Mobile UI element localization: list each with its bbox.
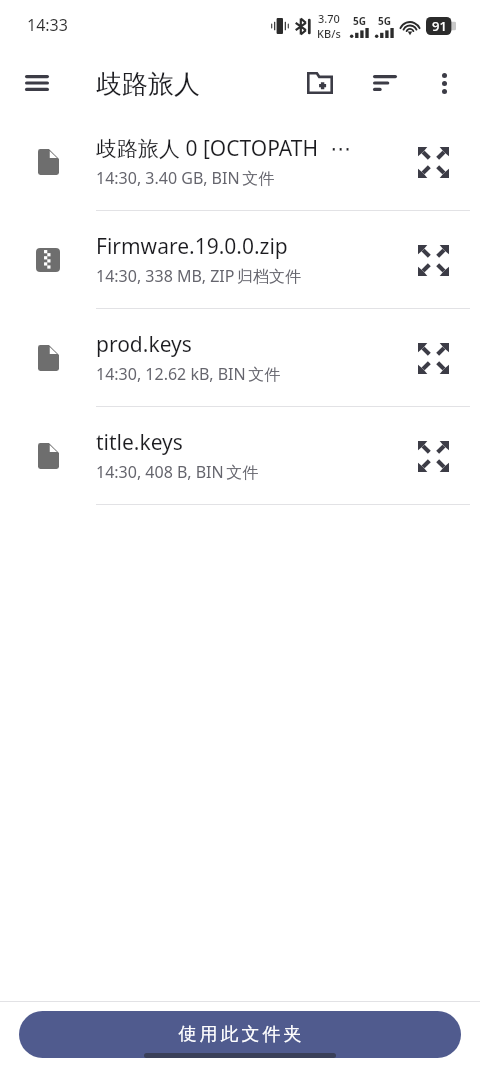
staticText: 14:33	[27, 14, 68, 36]
staticText: Firmware.19.0.0.zip	[96, 232, 288, 261]
button[interactable]: Firmware.19.0.0.zip	[0, 211, 480, 309]
staticText: 3.70	[318, 11, 340, 26]
button[interactable]: Expand	[406, 429, 460, 483]
staticText: 使用此文件夹	[177, 1023, 303, 1046]
staticText: title.keys	[96, 428, 183, 457]
button[interactable]: Expand	[406, 233, 460, 287]
staticText: 14:30, 338 MB, ZIP 归档文件	[96, 265, 302, 287]
staticText: 5G	[378, 14, 391, 28]
button[interactable]: title.keys	[0, 407, 480, 505]
staticText: prod.keys	[96, 330, 192, 359]
button[interactable]: Expand	[406, 331, 460, 385]
button[interactable]: 使用此文件夹	[19, 1011, 461, 1058]
staticText: 歧路旅人 0 [OCTOPATH ⋯	[96, 134, 352, 163]
staticText: 14:30, 408 B, BIN 文件	[96, 461, 259, 483]
button[interactable]: More options	[420, 59, 468, 107]
staticText: 歧路旅人	[96, 68, 200, 101]
button[interactable]: 歧路旅人 0 [OCTOPATH ⋯	[0, 113, 480, 211]
button[interactable]: Navigation menu	[13, 59, 61, 107]
button[interactable]: Sort	[361, 59, 409, 107]
staticText: KB/s	[317, 26, 341, 41]
button[interactable]: Create new folder	[296, 59, 344, 107]
button[interactable]: Expand	[406, 135, 460, 189]
staticText: 91	[432, 17, 447, 35]
staticText: 5G	[353, 14, 366, 28]
staticText: 14:30, 3.40 GB, BIN 文件	[96, 167, 275, 189]
staticText: 14:30, 12.62 kB, BIN 文件	[96, 363, 281, 385]
button[interactable]: prod.keys	[0, 309, 480, 407]
